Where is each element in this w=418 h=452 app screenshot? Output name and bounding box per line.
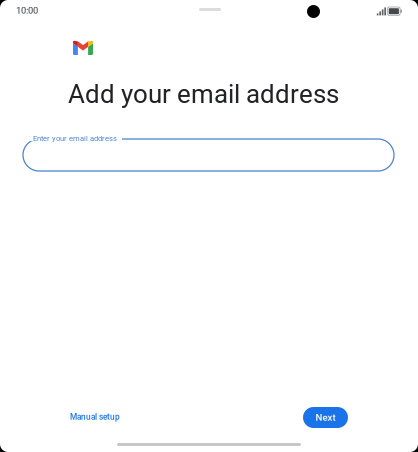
button[interactable]: Manual setup	[62, 404, 128, 430]
button[interactable]: Next	[303, 407, 348, 428]
button[interactable]: Enter your email address	[23, 139, 394, 171]
staticText: Next	[315, 412, 335, 423]
staticText: Manual setup	[70, 412, 120, 422]
staticText: 10:00	[16, 5, 38, 16]
staticText: Add your email address	[68, 79, 339, 109]
staticText: Enter your email address	[33, 134, 117, 143]
